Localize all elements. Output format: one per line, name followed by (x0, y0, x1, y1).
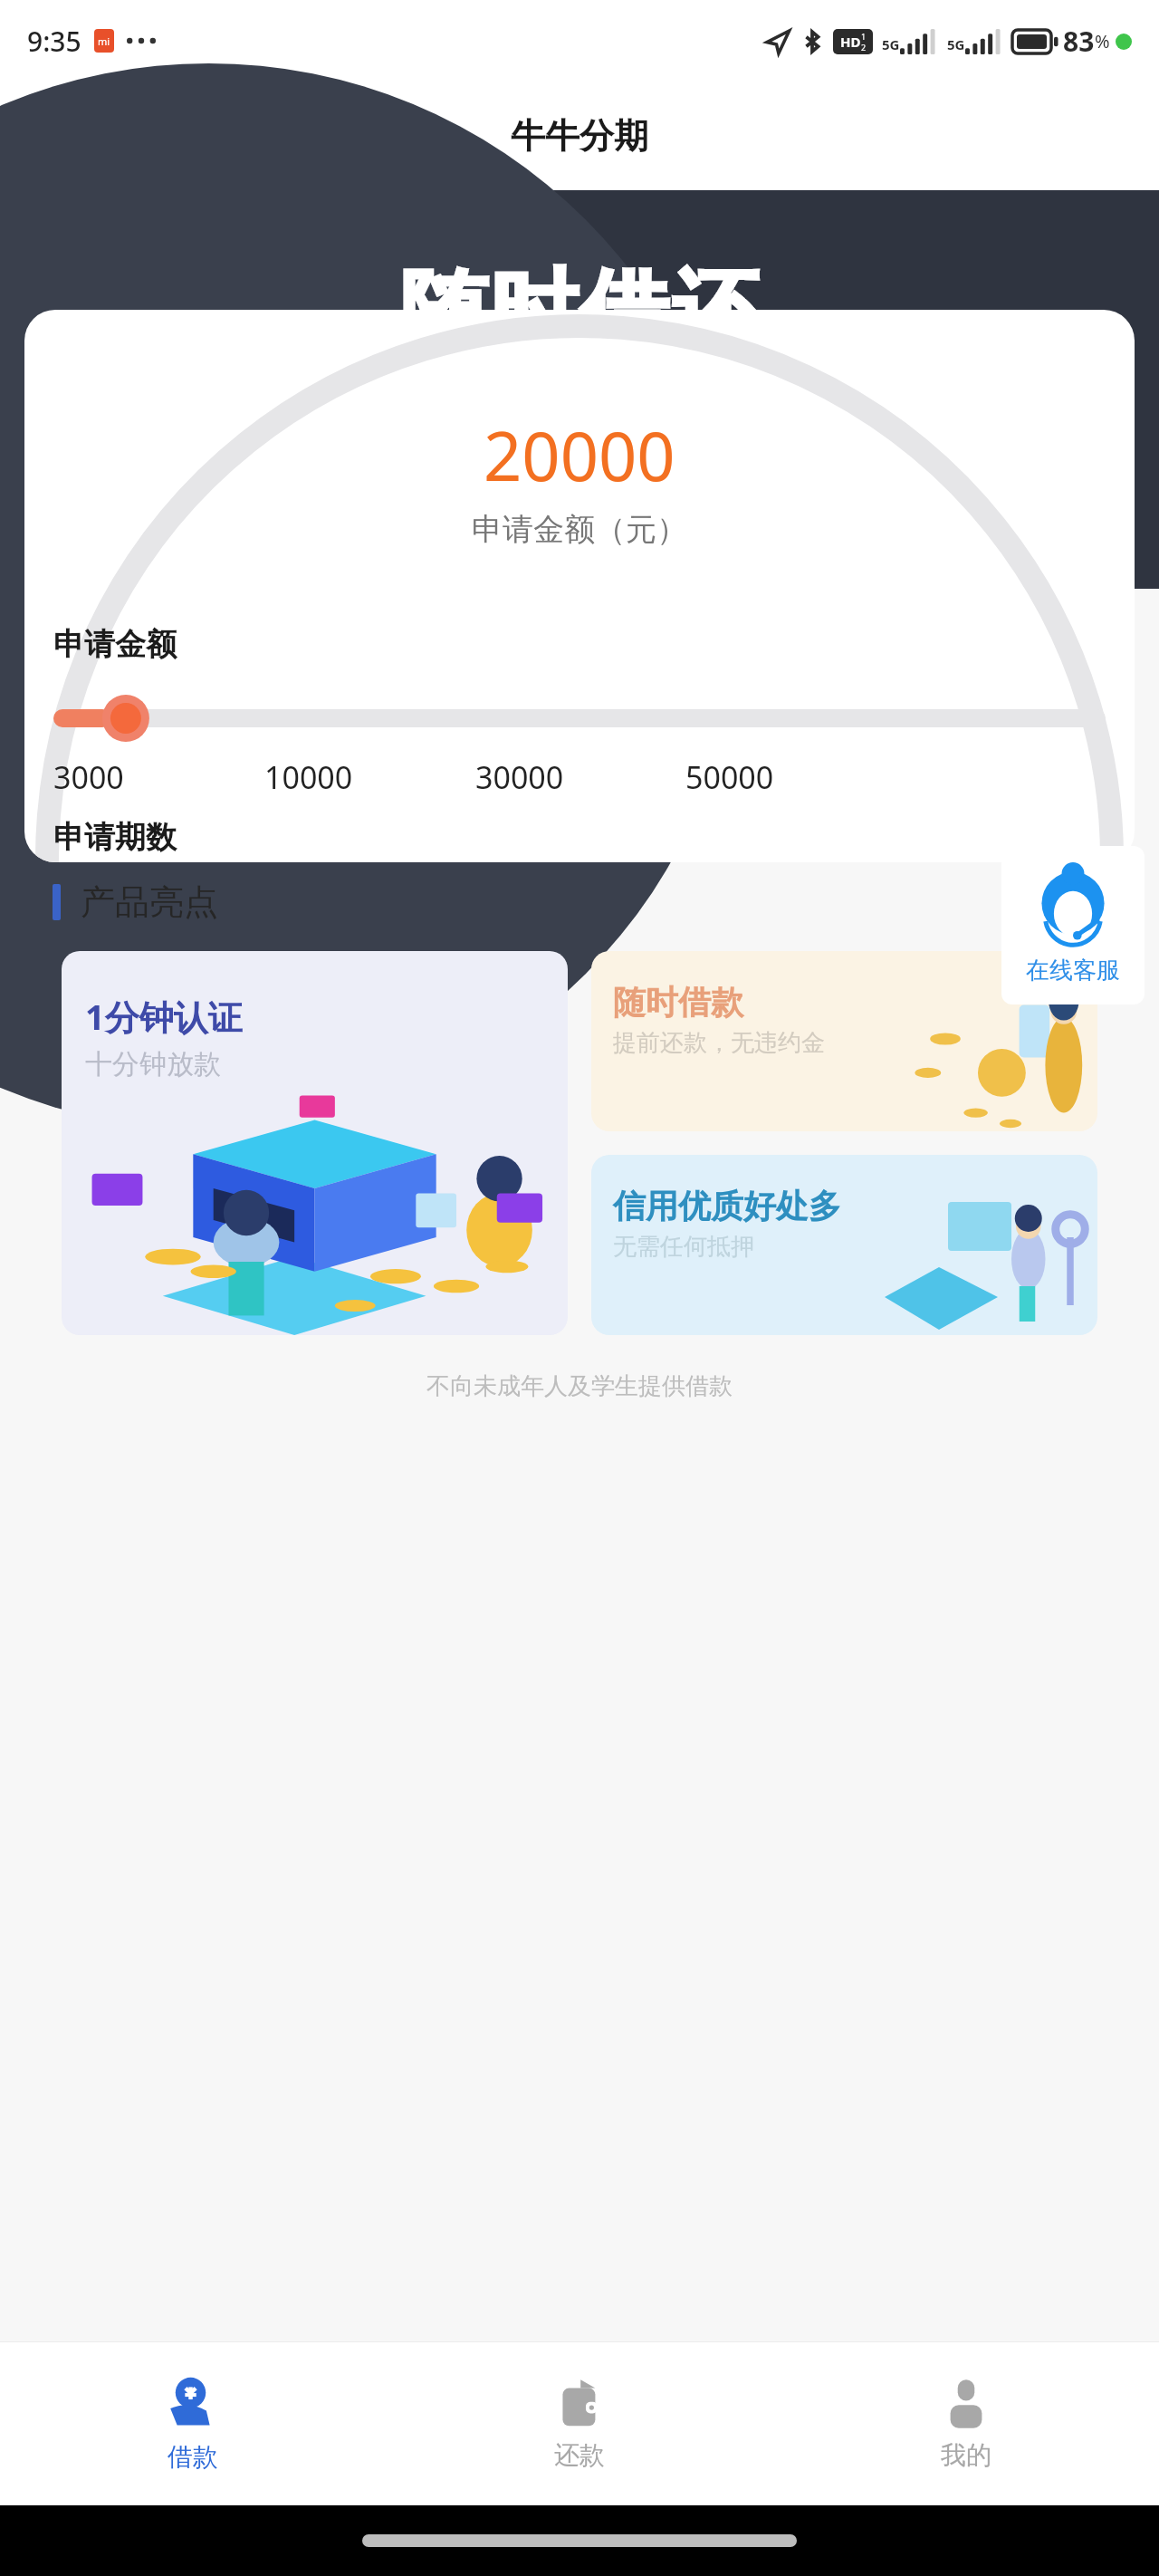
staticText: 借款 (168, 2441, 218, 2473)
button[interactable]: 借款 (0, 2342, 386, 2505)
staticText: 在线客服 (1026, 956, 1120, 985)
staticText: 30000 (475, 756, 564, 798)
staticText: 50000 (685, 756, 774, 798)
button[interactable] (53, 695, 1106, 742)
staticText: 83 (1063, 23, 1095, 60)
button[interactable]: 随时借款 (591, 951, 1097, 1131)
staticText: 高效 简单 安全 (384, 390, 666, 445)
staticText: 还款 (554, 2439, 605, 2471)
staticText: 我的 (941, 2439, 991, 2471)
staticText: 提前还款，无违约金 (613, 1028, 825, 1058)
staticText: mi (98, 34, 110, 48)
staticText: 去还款 (528, 754, 631, 797)
staticText: 信用优质好处多 (613, 1186, 841, 1226)
staticText: 1分钟认证 (85, 993, 243, 1040)
staticText: 随时借还 (398, 257, 761, 367)
staticText: 随时借款 (613, 982, 743, 1023)
staticText: HD (840, 33, 861, 51)
staticText: 5G (947, 35, 965, 53)
staticText: 3000 (53, 756, 124, 798)
staticText: 申请期数 (53, 818, 177, 857)
staticText: 1 (861, 31, 867, 42)
button[interactable]: 去还款 (83, 726, 1076, 824)
button[interactable]: 信用优质好处多 (591, 1155, 1097, 1335)
staticText: 牛牛分期 (511, 114, 648, 158)
staticText: 申请金额（元） (472, 510, 687, 549)
staticText: 无需任何抵押 (613, 1232, 754, 1262)
button[interactable]: 1分钟认证 (62, 951, 568, 1335)
button[interactable]: 我的 (772, 2342, 1159, 2505)
staticText: 产品亮点 (81, 880, 218, 924)
staticText: 5G (882, 35, 900, 53)
staticText: 不向未成年人及学生提供借款 (0, 1371, 1159, 1401)
button[interactable]: 在线客服 (1001, 846, 1145, 1004)
staticText: 2 (861, 42, 867, 53)
staticText: 十分钟放款 (85, 1047, 221, 1081)
staticText: 9:35 (27, 23, 81, 60)
staticText: % (1095, 29, 1110, 53)
staticText: 20000 (484, 409, 675, 501)
staticText: 申请金额 (53, 625, 177, 664)
staticText: 10000 (264, 756, 353, 798)
button[interactable]: 还款 (386, 2342, 772, 2505)
